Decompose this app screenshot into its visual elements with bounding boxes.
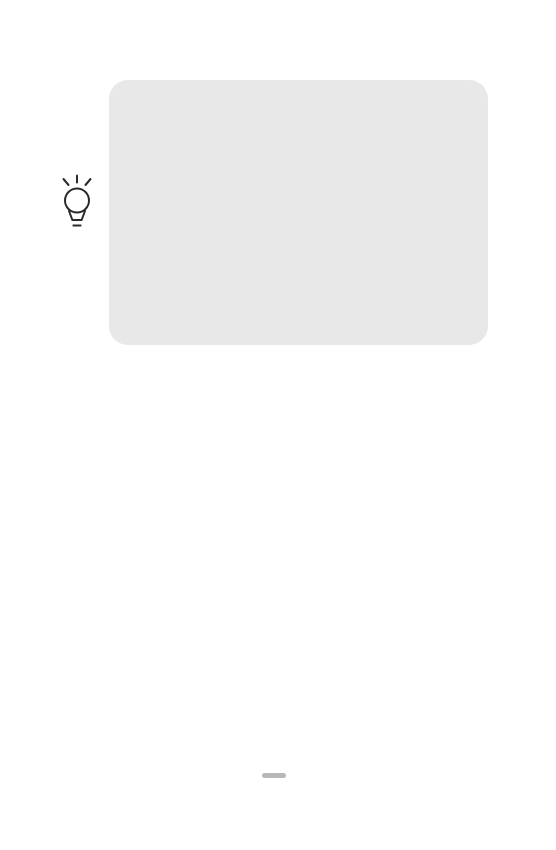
button[interactable]: Tip [53,173,101,241]
